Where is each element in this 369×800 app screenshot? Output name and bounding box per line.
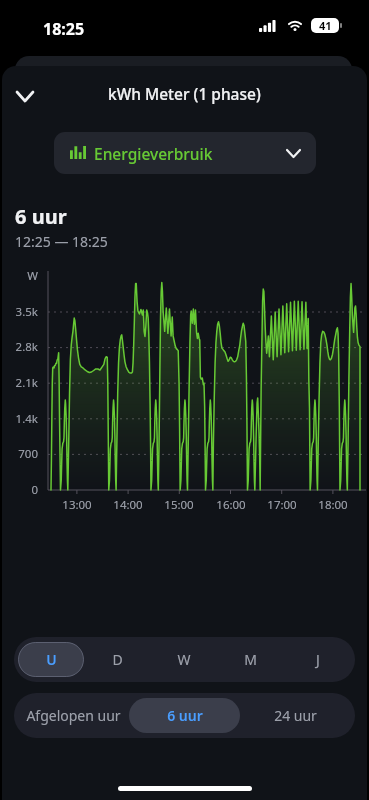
staticText: M [244,650,257,669]
button[interactable]: D [84,642,150,677]
staticText: 18:00 [303,497,363,513]
button[interactable]: U [18,642,84,677]
staticText: 17:00 [252,497,312,513]
staticText: 12:25 — 18:25 [15,232,108,251]
staticText: 18:25 [43,18,85,40]
staticText: 2.8k [0,339,38,355]
staticText: 6 uur [15,203,67,230]
button[interactable]: Collapse [6,77,43,114]
staticText: 13:00 [47,497,107,513]
button[interactable]: 24 uur [240,698,351,733]
button[interactable]: W [150,642,217,677]
staticText: U [46,650,57,669]
staticText: W [0,268,38,284]
staticText: Energieverbruik [94,143,213,164]
staticText: 2.1k [0,375,38,391]
staticText: 3.5k [0,304,38,320]
staticText: 16:00 [201,497,261,513]
staticText: 700 [0,446,38,462]
staticText: 0 [0,482,38,498]
staticText: 24 uur [274,706,317,725]
staticText: kWh Meter (1 phase) [108,83,261,104]
button[interactable]: 6 uur [129,698,240,733]
staticText: W [177,650,191,669]
staticText: Afgelopen uur [26,706,121,725]
staticText: J [316,650,320,669]
button[interactable]: Afgelopen uur [18,698,129,733]
button[interactable]: Energieverbruik [54,132,316,174]
staticText: D [112,650,123,669]
button[interactable]: J [284,642,351,677]
staticText: 15:00 [149,497,209,513]
staticText: 1.4k [0,411,38,427]
staticText: 41 [319,18,332,33]
staticText: 6 uur [167,706,203,725]
button[interactable]: M [217,642,284,677]
staticText: 14:00 [98,497,158,513]
